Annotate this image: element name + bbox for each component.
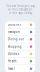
button[interactable]: Groceries — [5, 21, 35, 29]
staticText: Transport — [8, 30, 20, 34]
button[interactable]: Dining out — [5, 36, 35, 43]
button[interactable]: Health — [5, 58, 35, 65]
button[interactable]: Shopping — [5, 43, 35, 50]
staticText: Choose how you pay — [5, 4, 34, 8]
staticText: Groceries — [8, 23, 21, 26]
staticText: Utilities — [8, 52, 19, 56]
staticText: Shopping — [8, 45, 22, 48]
button[interactable]: Travel — [5, 65, 35, 72]
staticText: Dining out — [8, 38, 24, 41]
staticText: in the app today — [8, 11, 31, 15]
staticText: for this transaction — [7, 8, 32, 11]
button[interactable]: Utilities — [5, 50, 35, 58]
staticText: Health — [8, 59, 17, 63]
staticText: Travel — [8, 67, 15, 70]
button[interactable]: Transport — [5, 29, 35, 36]
